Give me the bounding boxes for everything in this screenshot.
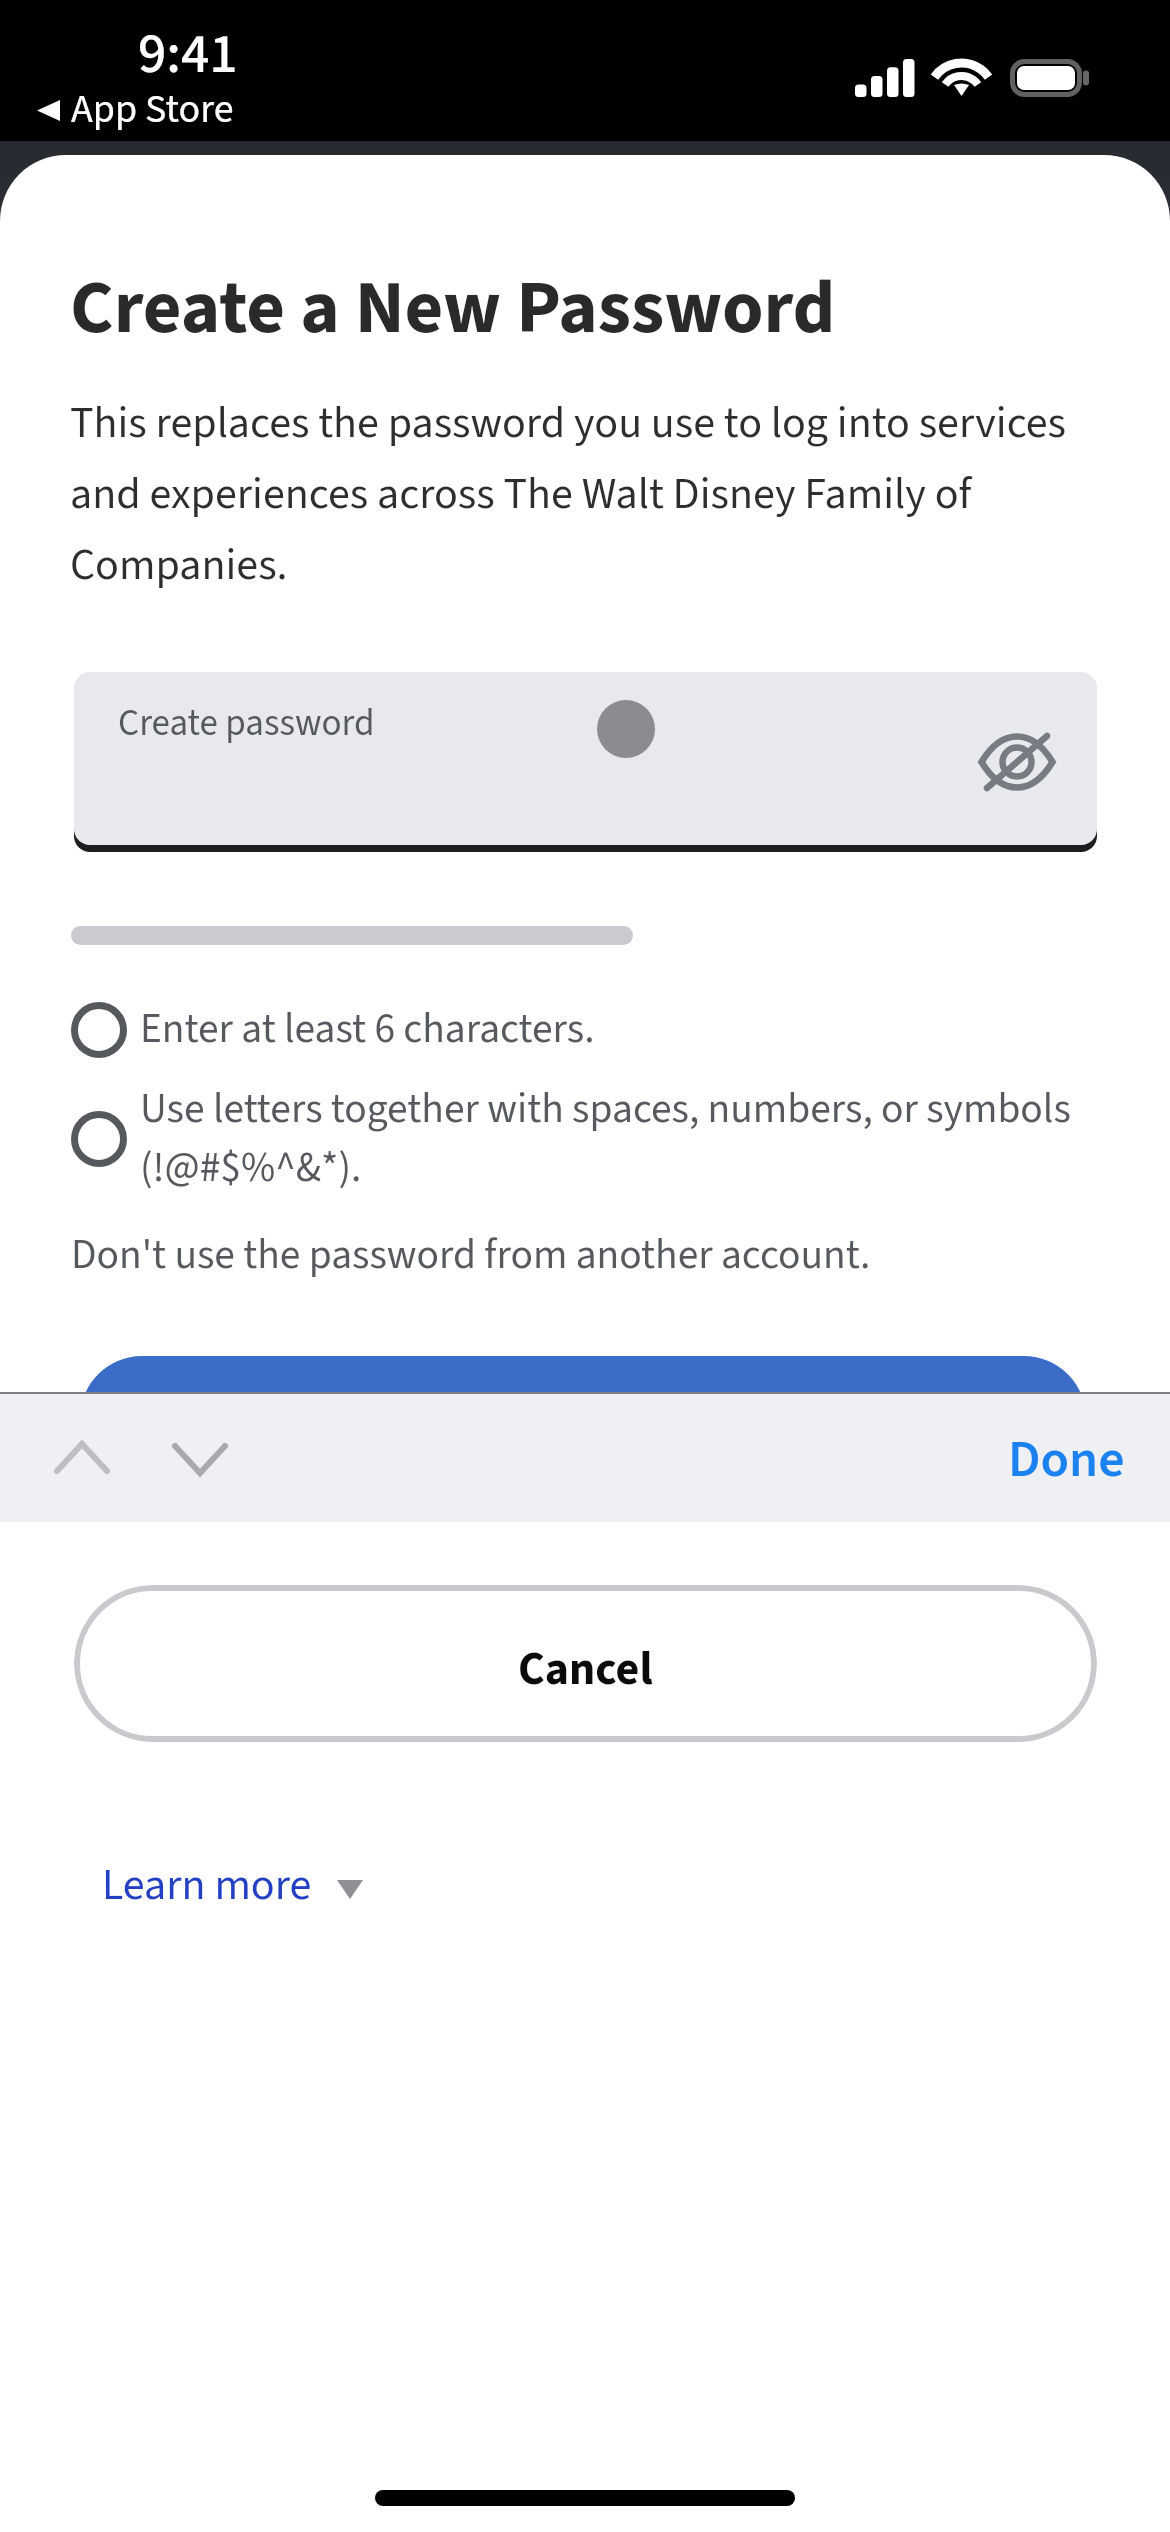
staticText: App Store — [71, 81, 234, 138]
button[interactable]: Learn more — [96, 1844, 369, 1927]
staticText: Cancel — [518, 1637, 653, 1703]
button[interactable]: Use letters together with spaces, number… — [71, 1080, 1101, 1198]
button[interactable]: Done — [994, 1405, 1139, 1515]
staticText: Continue — [486, 1384, 680, 1452]
staticText: This replaces the password you use to lo… — [70, 392, 1105, 597]
button[interactable]: Previous field — [12, 1406, 152, 1508]
staticText: Done — [1008, 1423, 1125, 1497]
staticText: Don't use the password from another acco… — [71, 1226, 871, 1285]
button[interactable]: Create password — [74, 672, 1097, 845]
staticText: Create password — [118, 697, 375, 750]
staticText: 9:41 — [138, 15, 238, 95]
button[interactable]: Next field — [130, 1408, 270, 1510]
button[interactable]: Continue — [80, 1356, 1086, 1480]
staticText: Enter at least 6 characters. — [140, 1000, 595, 1059]
staticText: Use letters together with spaces, number… — [140, 1080, 1101, 1198]
button[interactable]: Cancel — [74, 1585, 1097, 1742]
staticText: Learn more — [102, 1854, 312, 1917]
staticText: Create a New Password — [70, 255, 836, 362]
button[interactable]: Show password — [967, 714, 1067, 809]
button[interactable]: Enter at least 6 characters. — [71, 1000, 1101, 1059]
button[interactable]: Back to App Store — [31, 78, 240, 143]
